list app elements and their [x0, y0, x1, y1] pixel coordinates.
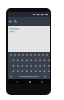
button[interactable]: Navigate up — [8, 17, 13, 26]
button[interactable]: Home — [25, 79, 34, 84]
button[interactable]: Search — [13, 17, 18, 26]
button[interactable]: Back — [12, 79, 21, 84]
button[interactable]: Keyboard — [8, 52, 50, 79]
button[interactable]: Recent apps — [37, 79, 46, 84]
